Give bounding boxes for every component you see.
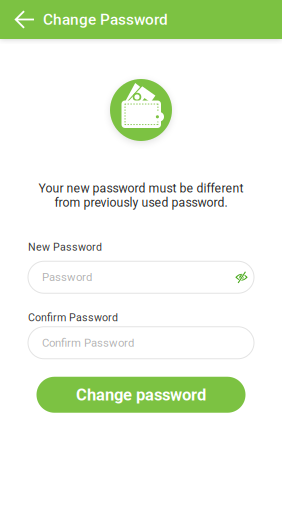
button[interactable]: Back	[0, 0, 43, 39]
staticText: Change Password	[43, 10, 168, 28]
button[interactable]: Change password	[36, 377, 245, 413]
staticText: Confirm Password	[42, 336, 134, 349]
staticText: Change password	[76, 385, 206, 404]
staticText: Your new password must be different	[38, 181, 243, 195]
staticText: from previously used password.	[54, 195, 227, 210]
staticText: Confirm Password	[28, 311, 118, 324]
staticText: New Password	[28, 241, 102, 253]
staticText: Password	[42, 271, 92, 284]
